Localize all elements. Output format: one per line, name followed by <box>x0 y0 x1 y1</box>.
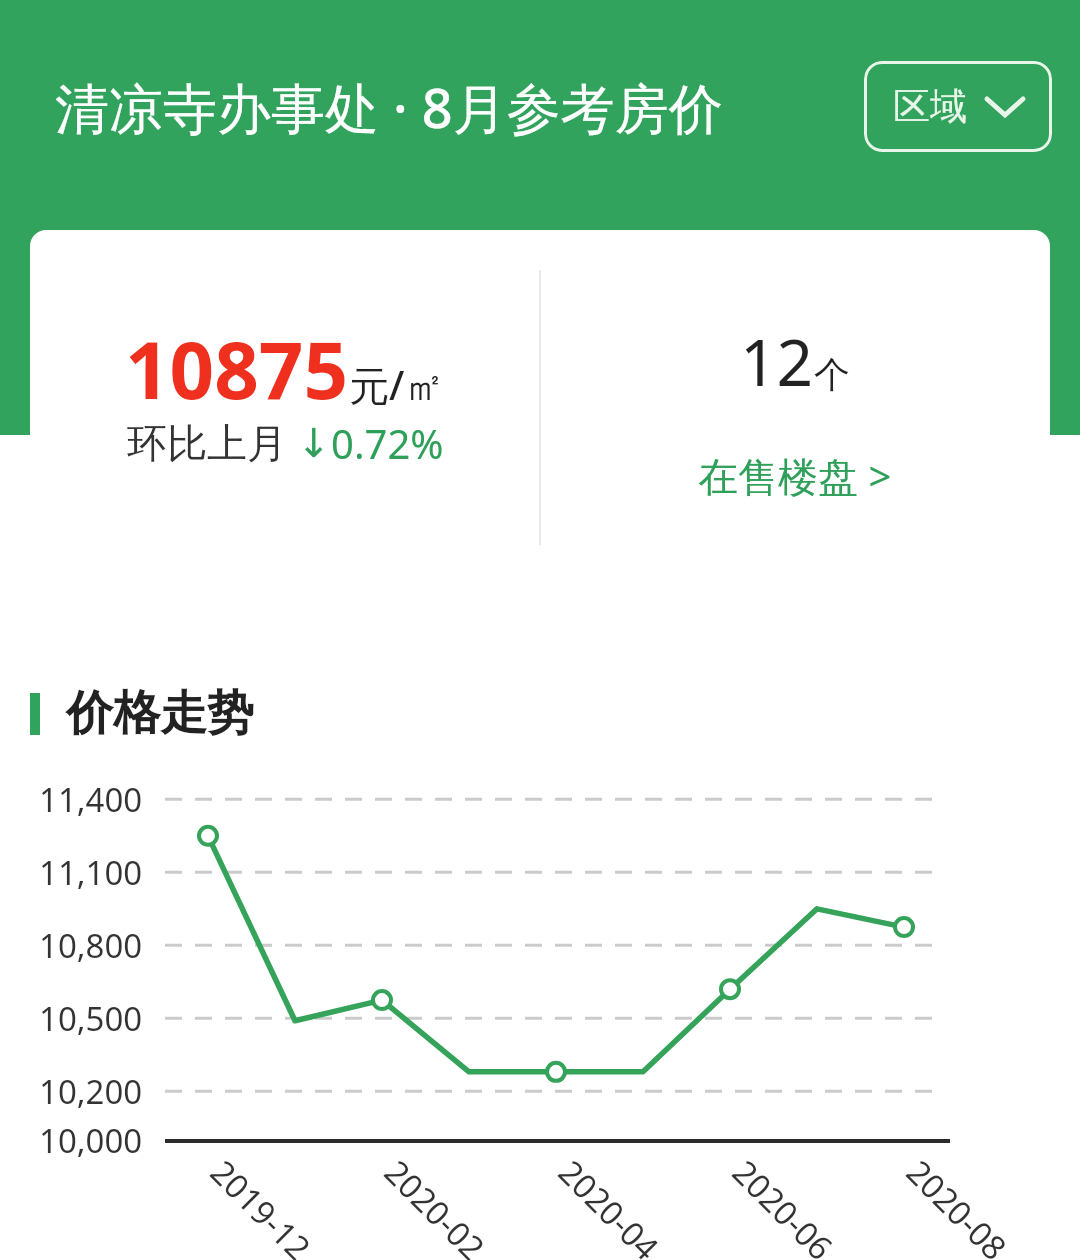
staticText: 区域 <box>893 83 967 130</box>
button[interactable]: 10875 <box>30 316 540 422</box>
button[interactable]: 在售楼盘 > <box>540 448 1050 503</box>
staticText: 清凉寺办事处 · 8月参考房价 <box>55 70 723 144</box>
staticText: 10875 <box>125 316 349 422</box>
staticText: 价格走势 <box>66 684 254 743</box>
button[interactable]: 12 <box>540 318 1050 405</box>
staticText: 个 <box>814 352 850 397</box>
staticText: 元/㎡ <box>349 357 445 412</box>
staticText: 在售楼盘 > <box>698 448 892 503</box>
staticText: ↓ <box>297 420 331 467</box>
staticText: 环比上月 <box>127 418 287 468</box>
staticText: 12 <box>740 318 814 405</box>
staticText: 0.72% <box>331 416 444 470</box>
button[interactable]: 区域 <box>864 61 1052 152</box>
